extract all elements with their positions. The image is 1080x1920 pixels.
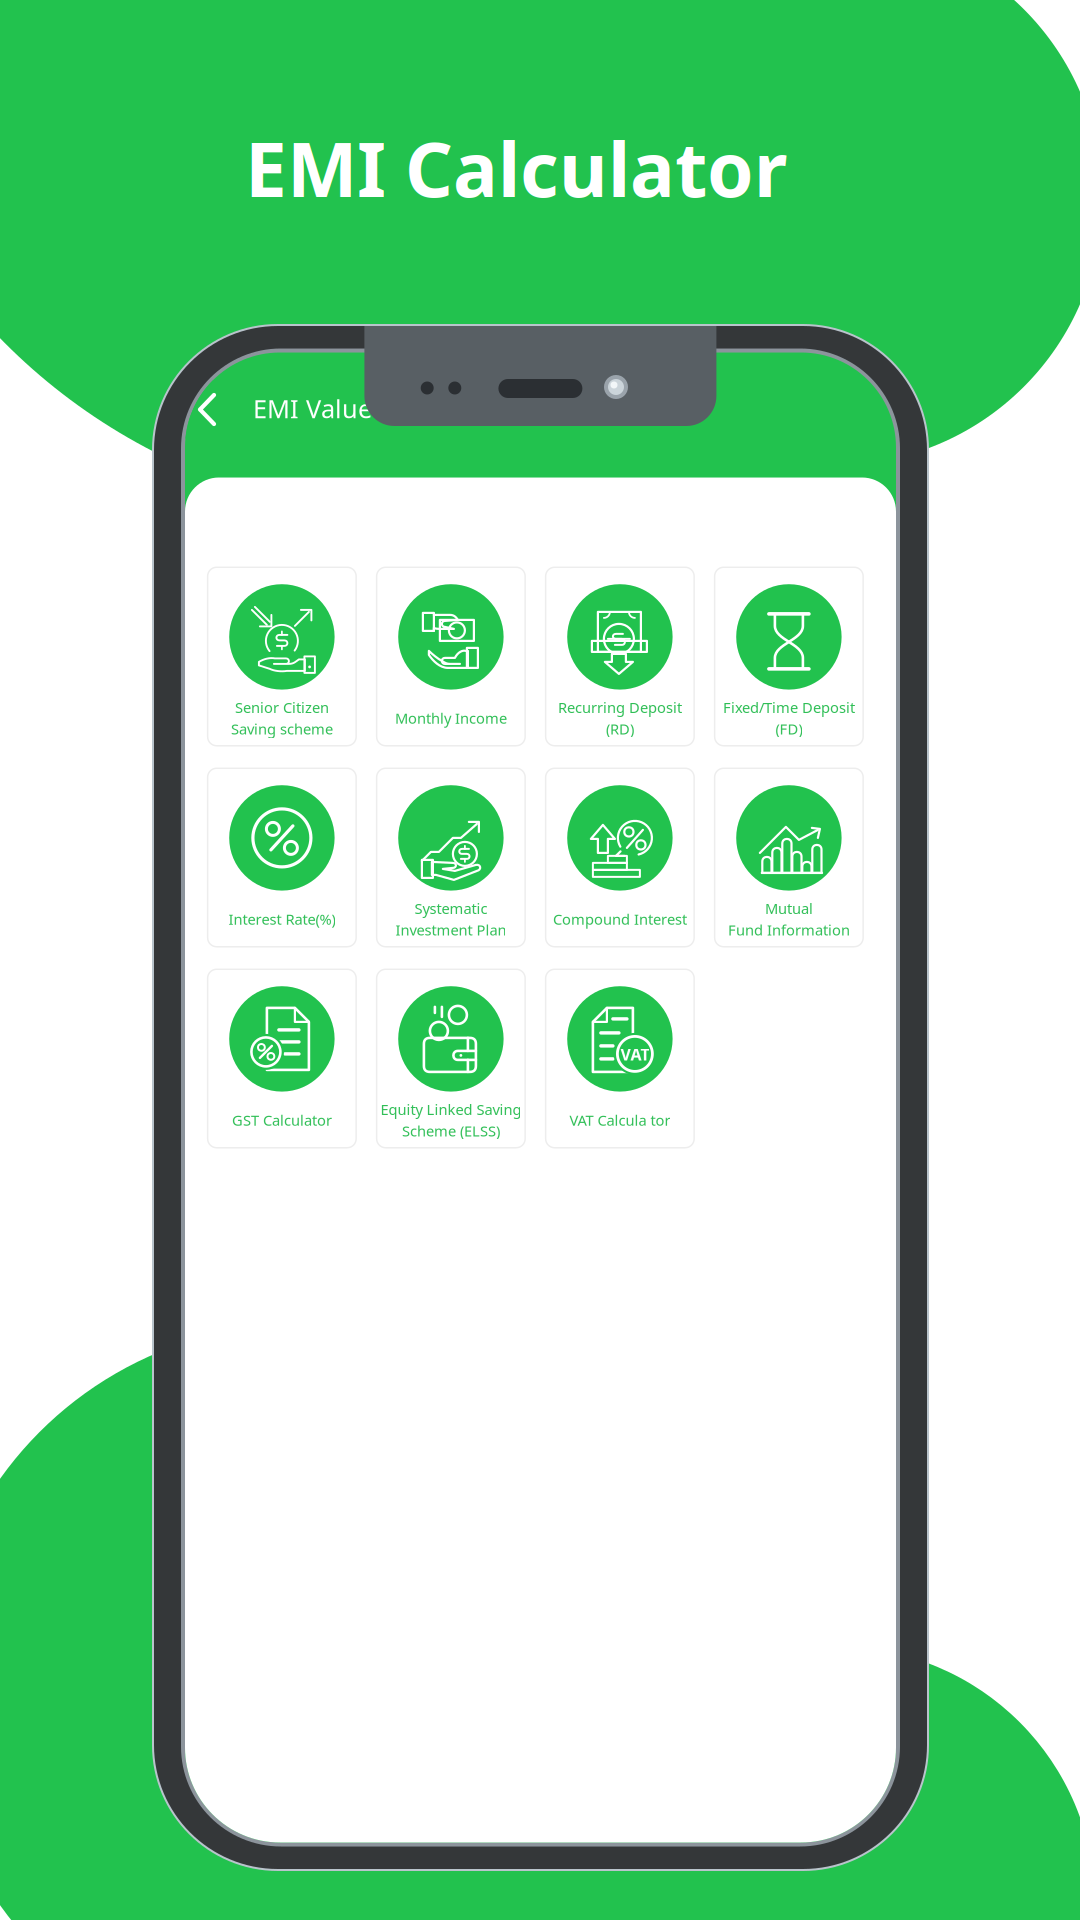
staticText: EMI Value Calculator — [253, 392, 499, 425]
staticText: Saving scheme — [231, 719, 333, 738]
button[interactable]: Mutual — [714, 767, 864, 947]
staticText: GST Calculator — [232, 1110, 332, 1130]
staticText: Equity Linked Saving — [380, 1100, 521, 1119]
button[interactable]: Back — [183, 380, 231, 438]
staticText: Fixed/Time Deposit — [723, 698, 855, 717]
button[interactable]: Monthly Income — [376, 566, 526, 746]
button[interactable]: Equity Linked Saving — [376, 968, 526, 1148]
button[interactable]: Interest Rate(%) — [207, 767, 357, 947]
staticText: Senior Citizen — [235, 698, 329, 717]
staticText: Compound Interest — [553, 909, 687, 929]
staticText: VAT Calcula tor — [569, 1110, 670, 1130]
button[interactable]: Compound Interest — [545, 767, 695, 947]
button[interactable]: Systematic — [376, 767, 526, 947]
staticText: Investment Plan — [395, 920, 506, 939]
staticText: Monthly Income — [395, 708, 507, 728]
button[interactable]: Senior Citizen — [207, 566, 357, 746]
staticText: (RD) — [606, 719, 634, 738]
staticText: Mutual — [765, 899, 813, 918]
button[interactable]: GST Calculator — [207, 968, 357, 1148]
staticText: Recurring Deposit — [558, 698, 682, 717]
staticText: (FD) — [775, 719, 802, 738]
button[interactable]: Recurring Deposit — [545, 566, 695, 746]
staticText: Systematic — [414, 899, 487, 918]
staticText: Scheme (ELSS) — [402, 1121, 500, 1140]
staticText: Fund Information — [728, 920, 850, 939]
staticText: EMI Calculator — [245, 118, 787, 218]
button[interactable]: Fixed/Time Deposit — [714, 566, 864, 746]
button[interactable]: VAT — [545, 968, 695, 1148]
staticText: Interest Rate(%) — [228, 909, 335, 929]
staticText: VAT — [620, 1044, 649, 1065]
